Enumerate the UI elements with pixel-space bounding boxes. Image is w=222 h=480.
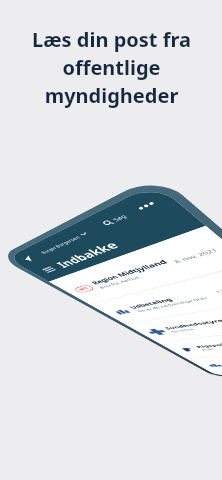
staticText: Politi <box>200 348 216 351</box>
staticText: Udbetaling Danmark <box>127 288 213 310</box>
staticText: Sundhedsstyrelsen <box>163 315 222 330</box>
staticText: Sundhed <box>170 328 196 333</box>
staticText: NYT <box>78 286 90 291</box>
button[interactable]: Udbetaling Danmark <box>90 264 222 324</box>
staticText: Indbakke <box>52 238 123 270</box>
staticText: Læs din post fra offentlige myndigheder <box>32 26 191 109</box>
button[interactable]: Sundhedsstyrelsen <box>126 296 222 342</box>
staticText: Region Midtjylland <box>89 258 170 286</box>
staticText: Rigspolitiet <box>194 341 222 349</box>
button[interactable]: Borgerservice <box>213 367 222 376</box>
button[interactable]: Menu <box>40 265 58 274</box>
staticText: Søg <box>111 213 128 222</box>
button[interactable]: More options <box>133 198 159 213</box>
staticText: Her er dit nødvendige brev <box>135 296 210 313</box>
button[interactable]: Skattestyrelsen <box>187 347 222 373</box>
button[interactable]: Søg <box>97 210 132 229</box>
staticText: Brev fra: Aarhus Universitetshospital <box>98 264 178 290</box>
staticText: Borger Borgersen <box>39 234 82 255</box>
button[interactable]: NYT <box>49 226 222 304</box>
staticText: 8. nov. 2021 <box>172 247 220 264</box>
staticText: 11. jul. 2021 <box>214 281 222 294</box>
button[interactable]: Rigspolitiet <box>158 323 222 359</box>
